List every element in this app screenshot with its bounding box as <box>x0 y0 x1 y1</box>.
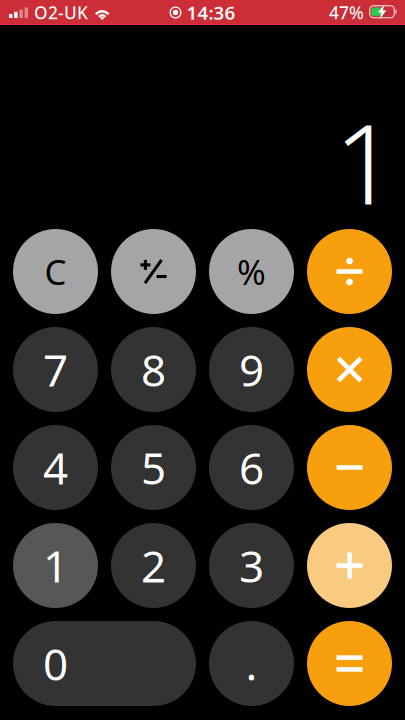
button[interactable]: 4 <box>13 425 98 510</box>
staticText: % <box>237 248 266 294</box>
staticText: 7 <box>43 340 68 399</box>
button[interactable]: Multiply <box>307 327 392 412</box>
staticText: 47% <box>329 1 364 24</box>
staticText: 14:36 <box>186 0 235 25</box>
staticText: 4 <box>43 438 68 497</box>
button[interactable]: 0 <box>13 621 196 706</box>
staticText: 1 <box>334 88 397 235</box>
staticText: 1 <box>43 536 68 595</box>
staticText: C <box>44 248 66 294</box>
staticText: 8 <box>141 340 166 399</box>
staticText: . <box>245 634 257 693</box>
button[interactable]: 8 <box>111 327 196 412</box>
button[interactable]: 5 <box>111 425 196 510</box>
button[interactable]: 6 <box>209 425 294 510</box>
staticText: O2-UK <box>34 1 88 24</box>
staticText: 9 <box>239 340 264 399</box>
button[interactable]: 9 <box>209 327 294 412</box>
staticText: 5 <box>141 438 166 497</box>
button[interactable]: 2 <box>111 523 196 608</box>
button[interactable]: % <box>209 229 294 314</box>
staticText: 3 <box>239 536 264 595</box>
staticText: 2 <box>141 536 166 595</box>
button[interactable]: 1 <box>13 523 98 608</box>
button[interactable]: Subtract <box>307 425 392 510</box>
staticText: 6 <box>239 438 264 497</box>
staticText: 0 <box>43 634 68 693</box>
button[interactable]: Add <box>307 523 392 608</box>
button[interactable]: Divide <box>307 229 392 314</box>
button[interactable]: C <box>13 229 98 314</box>
button[interactable]: Plus minus <box>111 229 196 314</box>
button[interactable]: . <box>209 621 294 706</box>
button[interactable]: 3 <box>209 523 294 608</box>
button[interactable]: 7 <box>13 327 98 412</box>
button[interactable]: Equals <box>307 621 392 706</box>
